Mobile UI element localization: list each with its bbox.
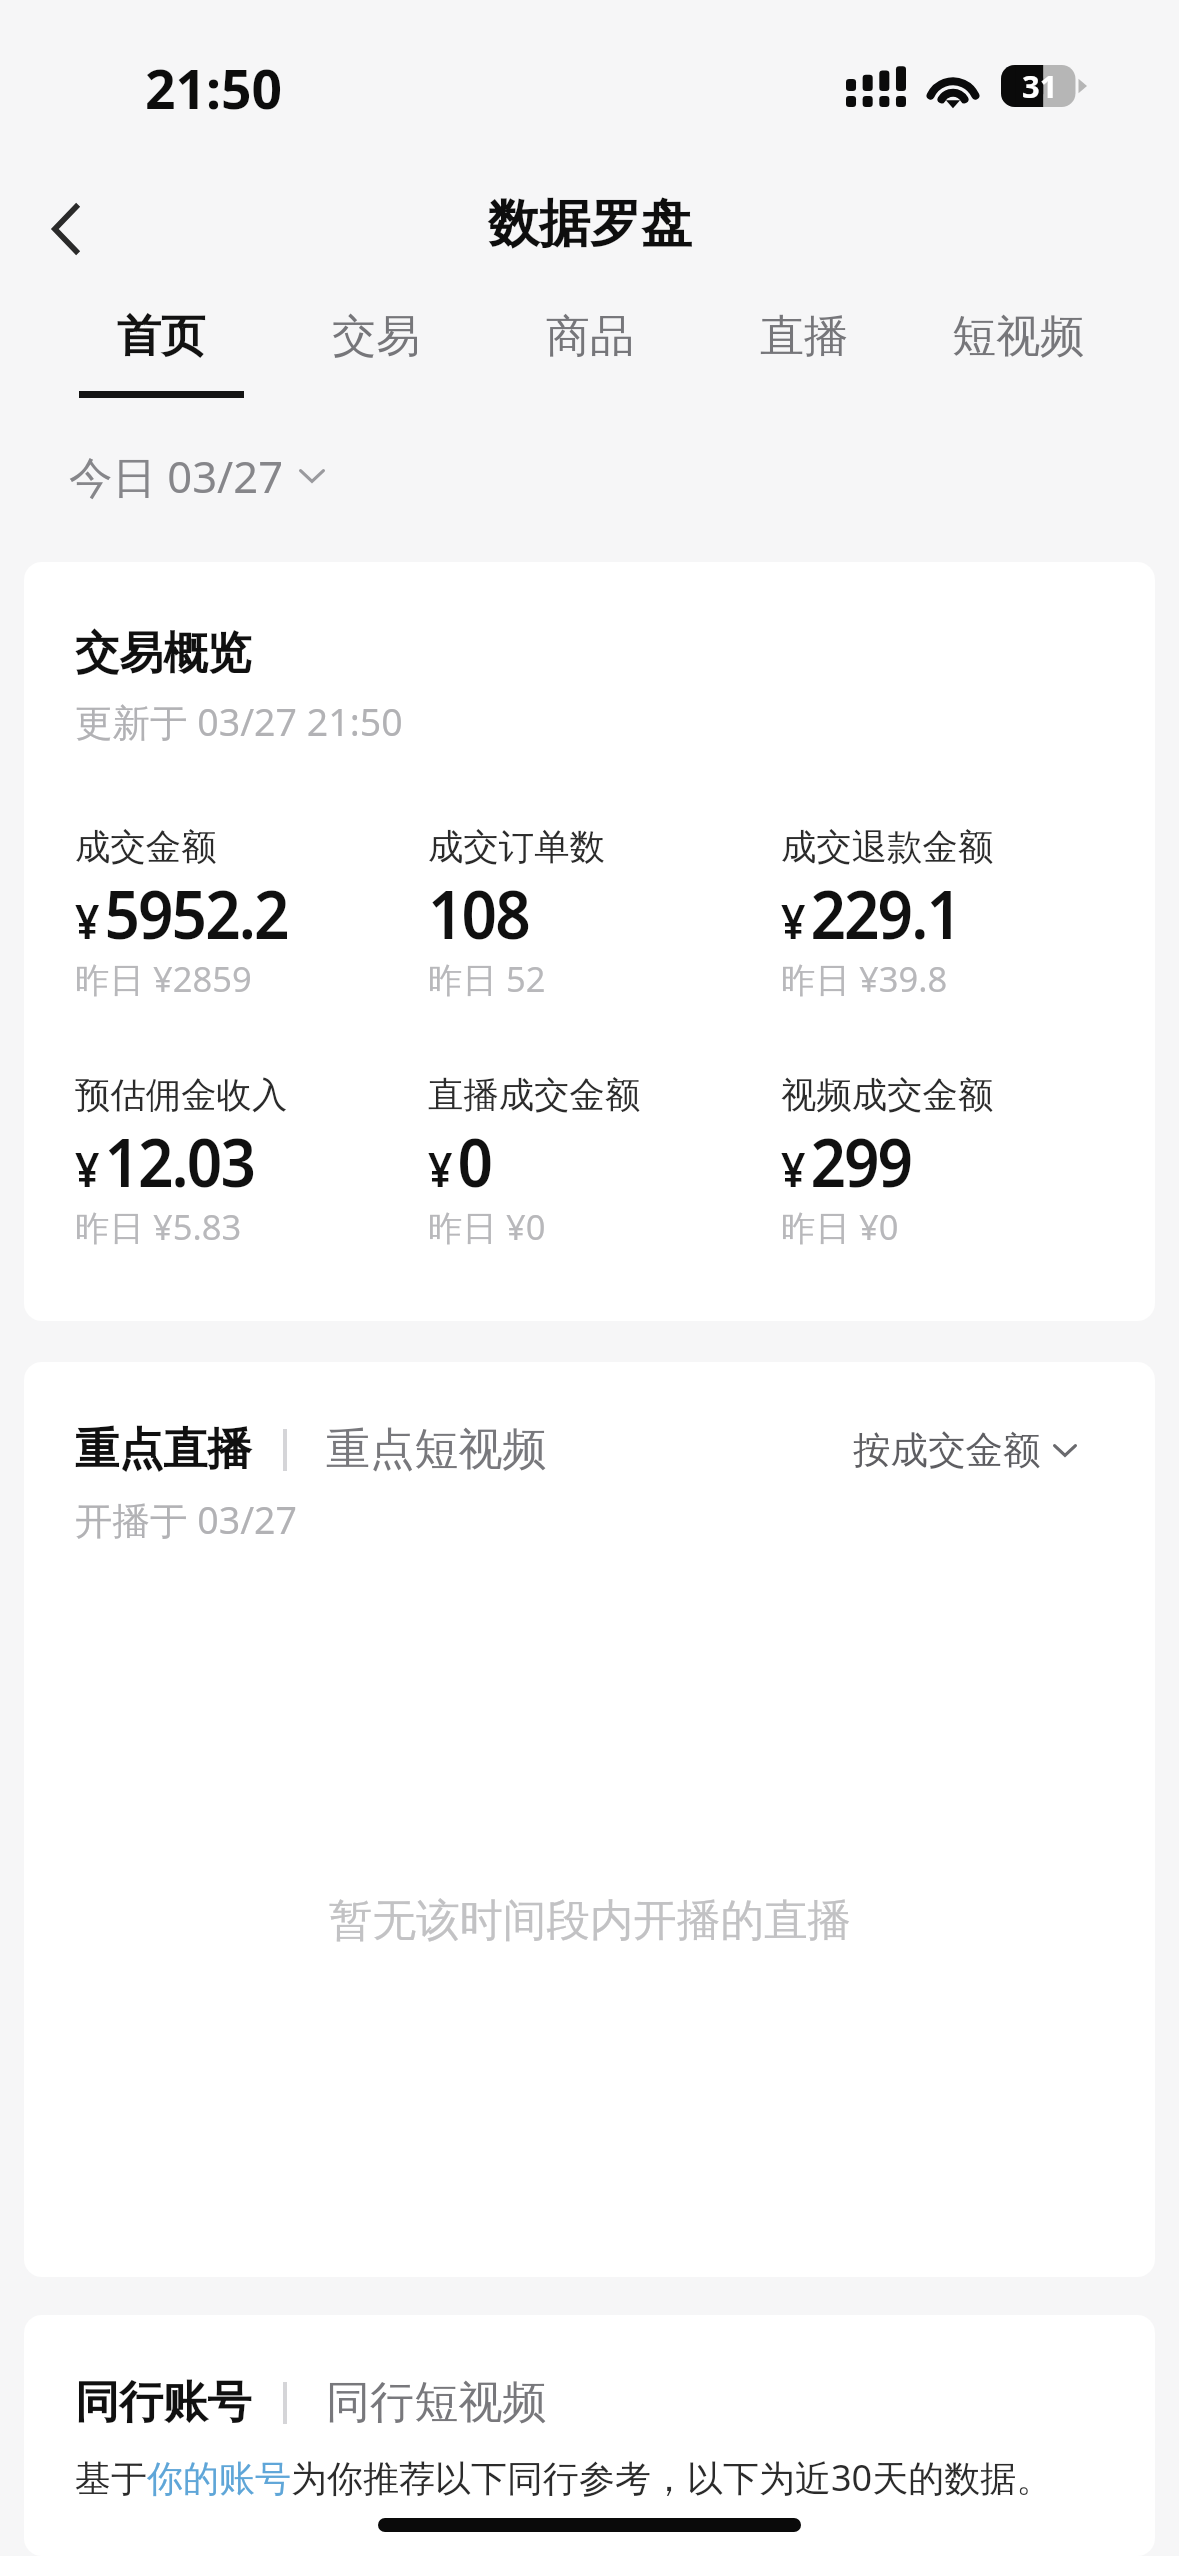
button[interactable]: 直播 bbox=[697, 309, 911, 408]
staticText: 成交订单数 bbox=[428, 825, 605, 870]
staticText: ¥ bbox=[781, 889, 806, 952]
staticText: 更新于 03/27 21:50 bbox=[75, 696, 403, 747]
staticText: 短视频 bbox=[952, 309, 1085, 365]
staticText: 预估佣金收入 bbox=[75, 1073, 288, 1118]
staticText: 视频成交金额 bbox=[781, 1073, 994, 1118]
button[interactable]: 短视频 bbox=[911, 309, 1125, 408]
staticText: 商品 bbox=[546, 309, 635, 365]
staticText: ¥ bbox=[75, 1137, 100, 1200]
staticText: 0 bbox=[457, 1115, 491, 1207]
staticText: 昨日 ¥0 bbox=[781, 1203, 899, 1250]
staticText: 交易概览 bbox=[75, 626, 252, 682]
staticText: ¥ bbox=[781, 1137, 806, 1200]
button[interactable]: 重点短视频 bbox=[326, 1413, 547, 1487]
button[interactable]: 同行短视频 bbox=[326, 2366, 547, 2440]
staticText: 交易 bbox=[332, 309, 421, 365]
staticText: 今日 03/27 bbox=[69, 446, 284, 505]
staticText: 昨日 ¥5.83 bbox=[75, 1203, 242, 1250]
button[interactable]: Back bbox=[5, 169, 125, 289]
button[interactable]: 重点直播 bbox=[75, 1413, 252, 1487]
staticText: 21:50 bbox=[145, 52, 283, 125]
staticText: 按成交金额 bbox=[853, 1427, 1041, 1474]
staticText: 299 bbox=[810, 1115, 912, 1207]
staticText: 开播于 03/27 bbox=[75, 1494, 297, 1545]
staticText: 首页 bbox=[117, 309, 206, 365]
staticText: 昨日 ¥0 bbox=[428, 1203, 546, 1250]
staticText: ¥ bbox=[428, 1137, 453, 1200]
staticText: 昨日 52 bbox=[428, 955, 546, 1002]
staticText: 直播 bbox=[760, 309, 849, 365]
staticText: 昨日 ¥39.8 bbox=[781, 955, 948, 1002]
button[interactable]: 商品 bbox=[483, 309, 697, 408]
button[interactable]: 同行账号 bbox=[75, 2366, 252, 2440]
button[interactable]: 首页 bbox=[54, 309, 269, 408]
staticText: 直播成交金额 bbox=[428, 1073, 641, 1118]
staticText: 成交退款金额 bbox=[781, 825, 994, 870]
staticText: 12.03 bbox=[104, 1115, 254, 1207]
staticText: 成交金额 bbox=[75, 825, 217, 870]
staticText: 暂无该时间段内开播的直播 bbox=[329, 1893, 851, 1948]
button[interactable]: 今日 03/27 bbox=[57, 434, 337, 517]
staticText: 108 bbox=[428, 867, 529, 959]
staticText: ¥ bbox=[75, 889, 100, 952]
staticText: 5952.2 bbox=[104, 867, 288, 959]
button[interactable]: 交易 bbox=[269, 309, 483, 408]
staticText: 229.1 bbox=[810, 867, 960, 959]
staticText: 昨日 ¥2859 bbox=[75, 955, 252, 1002]
staticText: 数据罗盘 bbox=[488, 192, 692, 256]
staticText: 31 bbox=[1022, 65, 1058, 107]
button[interactable]: 按成交金额 bbox=[847, 1415, 1083, 1486]
staticText: 基于你的账号为你推荐以下同行参考，以下为近30天的数据。 bbox=[75, 2453, 1053, 2502]
